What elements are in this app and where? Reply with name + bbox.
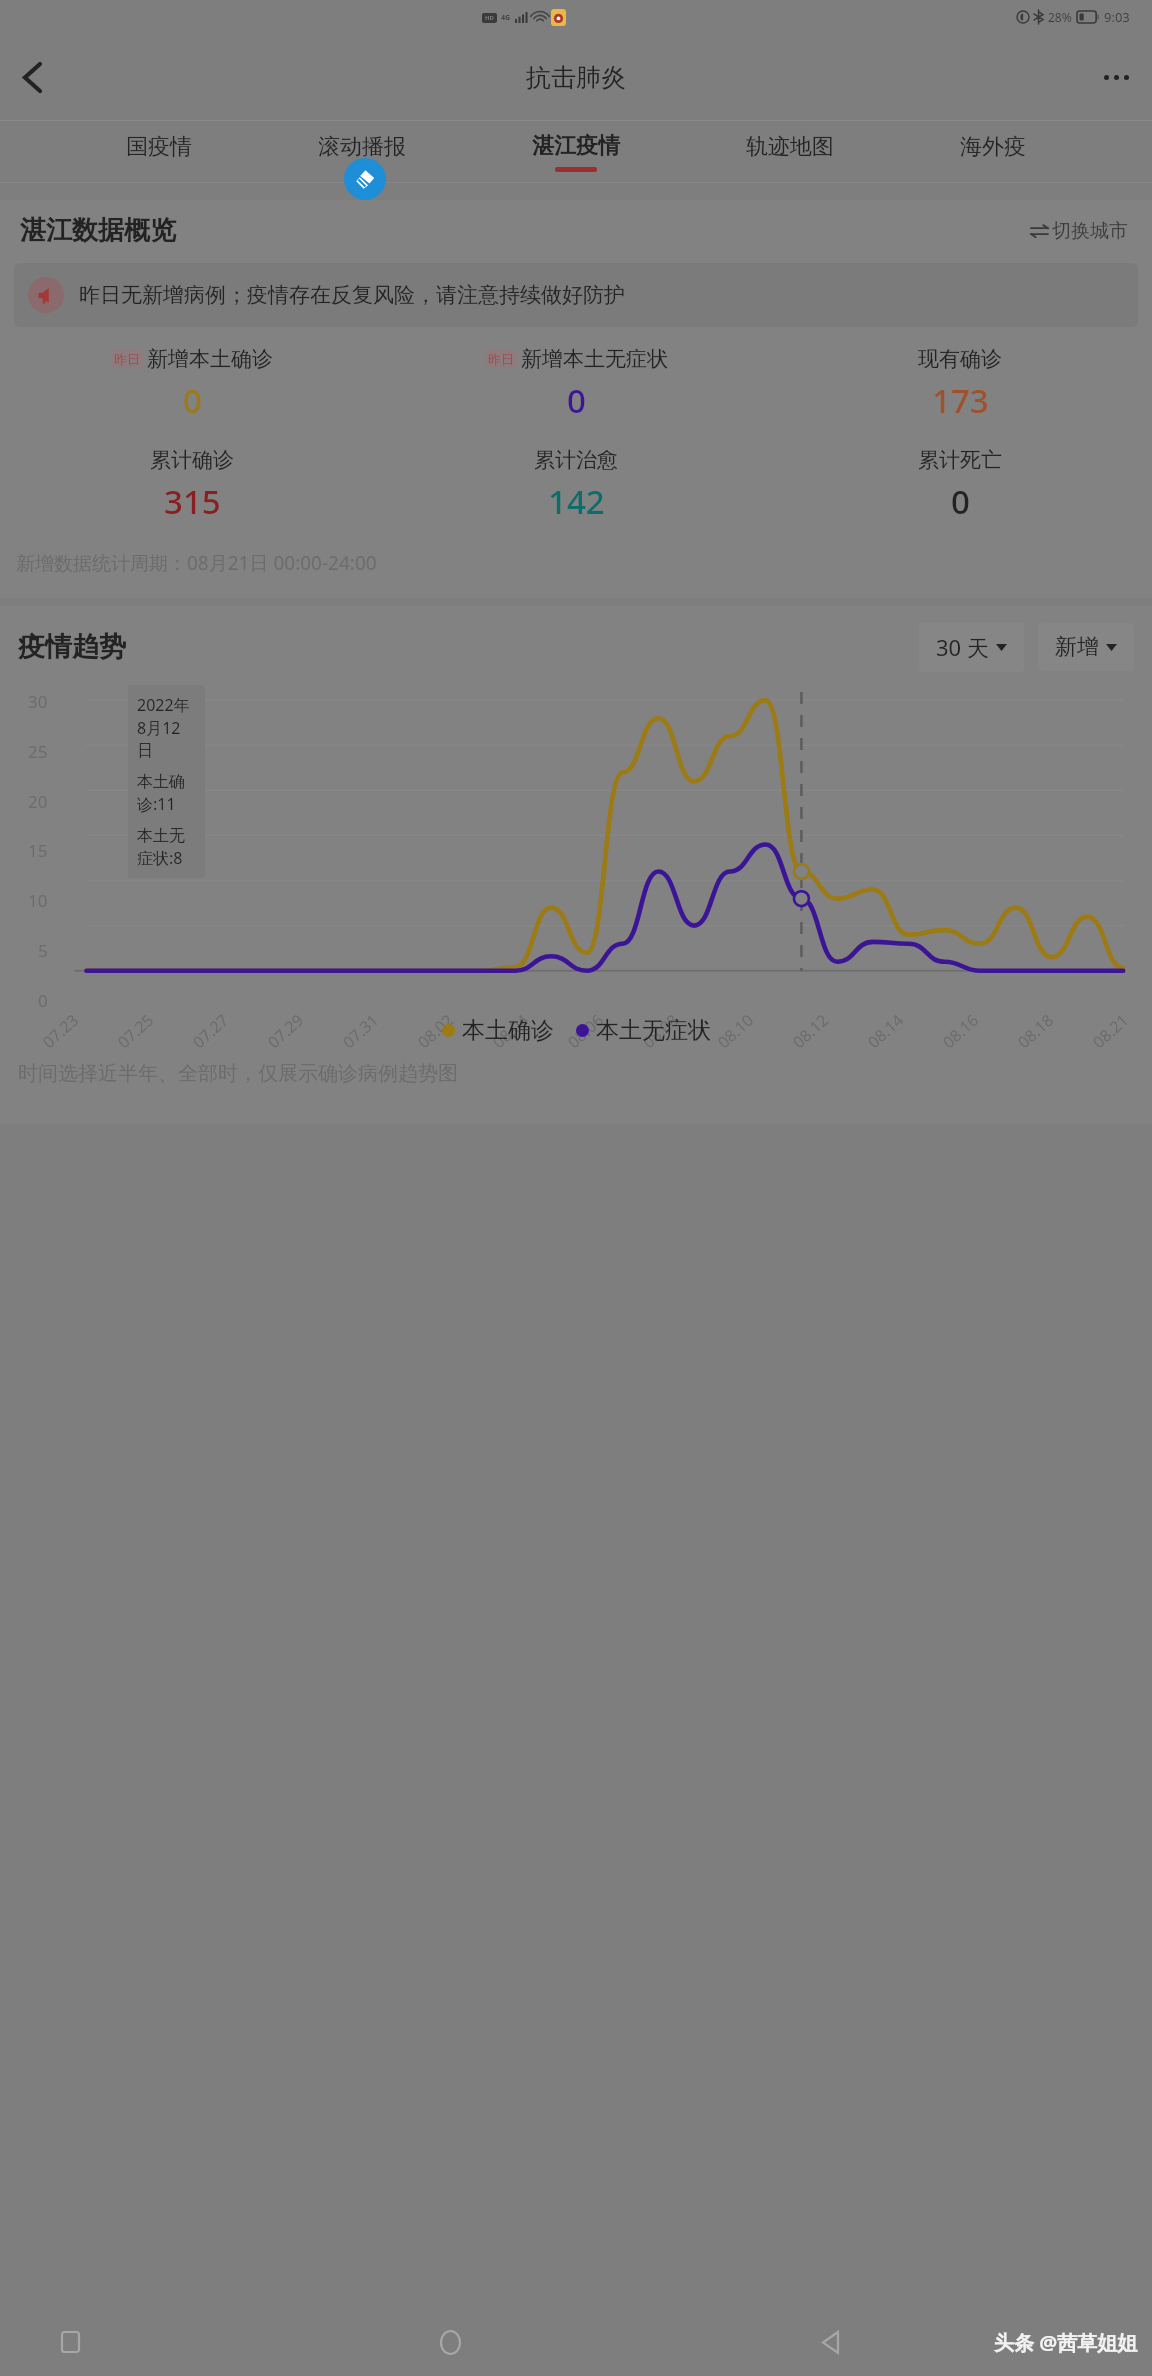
staticText: 0 xyxy=(951,479,970,524)
staticText: 142 xyxy=(548,479,605,524)
staticText: 本土确诊:11 xyxy=(137,772,196,815)
staticText: 07.25 xyxy=(113,1009,158,1053)
staticText: 08.21 xyxy=(1088,1009,1133,1053)
staticText: 10 xyxy=(28,889,48,912)
button[interactable]: 国疫情 xyxy=(126,121,192,183)
staticText: 湛江数据概览 xyxy=(20,214,176,247)
button[interactable]: 30 天 xyxy=(919,622,1024,672)
button[interactable]: 切换城市 xyxy=(1027,215,1132,247)
staticText: 滚动播报 xyxy=(318,133,406,161)
staticText: 新增本土无症状 xyxy=(521,346,668,372)
staticText: 08.16 xyxy=(938,1009,983,1053)
button[interactable]: 主屏幕 xyxy=(428,2320,472,2364)
staticText: 20 xyxy=(28,790,48,813)
staticText: 疫情趋势 xyxy=(18,630,126,664)
staticText: 08.08 xyxy=(638,1009,683,1053)
staticText: 新增 xyxy=(1055,633,1099,661)
staticText: 0 xyxy=(38,989,48,1012)
staticText: 07.23 xyxy=(38,1009,83,1053)
staticText: 08.14 xyxy=(863,1009,908,1053)
staticText: 0 xyxy=(567,378,586,423)
staticText: 4G xyxy=(501,13,511,23)
staticText: 30 天 xyxy=(936,632,989,662)
staticText: 28% xyxy=(1048,9,1072,25)
button[interactable]: 本土无症状 xyxy=(576,1016,711,1045)
staticText: 轨迹地图 xyxy=(746,133,834,161)
button[interactable]: 湛江疫情 xyxy=(532,121,620,183)
staticText: 5 xyxy=(38,939,48,962)
button[interactable]: 海外疫 xyxy=(960,121,1026,183)
staticText: 头条 @茜草姐姐 xyxy=(994,2329,1138,2356)
button[interactable]: 返回 xyxy=(6,51,58,103)
staticText: 15 xyxy=(28,839,48,862)
staticText: 昨日 xyxy=(114,351,140,367)
staticText: 国疫情 xyxy=(126,133,192,161)
staticText: 08.02 xyxy=(413,1009,458,1053)
button[interactable]: 本土确诊 xyxy=(442,1016,554,1045)
staticText: 昨日 xyxy=(488,351,514,367)
staticText: 新增本土确诊 xyxy=(147,346,273,372)
button[interactable]: 更多 xyxy=(1090,51,1142,103)
staticText: 累计死亡 xyxy=(918,447,1002,473)
button[interactable]: 清理 xyxy=(344,158,386,200)
staticText: 昨日无新增病例；疫情存在反复风险，请注意持续做好防护 xyxy=(79,282,625,308)
button[interactable]: 新增 xyxy=(1038,623,1134,671)
staticText: 抗击肺炎 xyxy=(526,62,626,93)
staticText: 本土确诊 xyxy=(462,1016,554,1045)
staticText: 新增数据统计周期：08月21日 00:00-24:00 xyxy=(16,550,377,576)
staticText: 08.18 xyxy=(1013,1009,1058,1053)
staticText: 08.12 xyxy=(788,1009,833,1053)
staticText: 现有确诊 xyxy=(918,346,1002,372)
staticText: 时间选择近半年、全部时，仅展示确诊病例趋势图 xyxy=(18,1061,458,1086)
button[interactable]: 滚动播报 xyxy=(318,121,406,183)
button[interactable]: 最近任务 xyxy=(48,2320,92,2364)
staticText: 湛江疫情 xyxy=(532,132,620,160)
staticText: 07.29 xyxy=(263,1009,308,1053)
staticText: 9:03 xyxy=(1104,8,1130,26)
button[interactable]: 昨日无新增病例；疫情存在反复风险，请注意持续做好防护 xyxy=(28,277,1124,313)
button[interactable]: 返回 xyxy=(808,2320,852,2364)
staticText: 0 xyxy=(183,378,202,423)
button[interactable]: 轨迹地图 xyxy=(746,121,834,183)
staticText: 累计治愈 xyxy=(534,447,618,473)
staticText: 2022年8月12日 xyxy=(137,694,196,761)
staticText: HD xyxy=(485,14,494,22)
staticText: 本土无症状:8 xyxy=(137,826,196,869)
staticText: 173 xyxy=(932,378,989,423)
staticText: 本土无症状 xyxy=(596,1016,711,1045)
staticText: 07.27 xyxy=(188,1009,233,1053)
staticText: 25 xyxy=(28,740,48,763)
staticText: 07.31 xyxy=(338,1009,383,1053)
staticText: 315 xyxy=(164,479,221,524)
staticText: 累计确诊 xyxy=(150,447,234,473)
staticText: 08.04 xyxy=(488,1009,533,1053)
staticText: 切换城市 xyxy=(1052,219,1128,243)
staticText: 08.06 xyxy=(563,1009,608,1053)
staticText: 海外疫 xyxy=(960,133,1026,161)
staticText: 08.10 xyxy=(713,1009,758,1053)
staticText: 30 xyxy=(28,690,48,713)
